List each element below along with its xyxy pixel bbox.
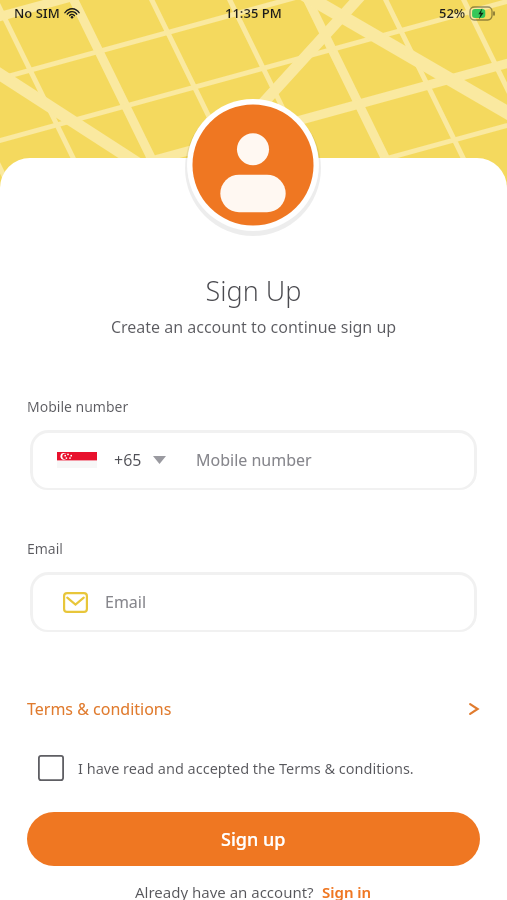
other: Profile photo: [185, 97, 321, 233]
staticText: Sign in: [322, 882, 372, 900]
staticText: Terms & conditions: [27, 698, 172, 720]
button[interactable]: Sign up: [27, 812, 480, 866]
staticText: Email: [27, 539, 63, 558]
staticText: 11:35 PM: [225, 4, 282, 22]
staticText: No SIM: [14, 4, 60, 22]
staticText: Mobile number: [27, 397, 129, 416]
button[interactable]: I have read and accepted the Terms & con…: [38, 750, 414, 786]
staticText: Already have an account?: [135, 882, 314, 900]
staticText: Sign up: [221, 827, 286, 852]
button[interactable]: +65: [30, 429, 477, 490]
button[interactable]: Sign in: [322, 882, 372, 900]
staticText: Email: [105, 591, 147, 613]
staticText: I have read and accepted the Terms & con…: [78, 758, 414, 778]
staticText: Create an account to continue sign up: [0, 316, 507, 338]
button[interactable]: Terms & conditions: [27, 694, 480, 724]
staticText: Mobile number: [196, 449, 312, 471]
staticText: +65: [114, 449, 142, 471]
button[interactable]: Email: [30, 571, 477, 632]
staticText: 52%: [439, 4, 466, 22]
staticText: Sign Up: [0, 272, 507, 309]
